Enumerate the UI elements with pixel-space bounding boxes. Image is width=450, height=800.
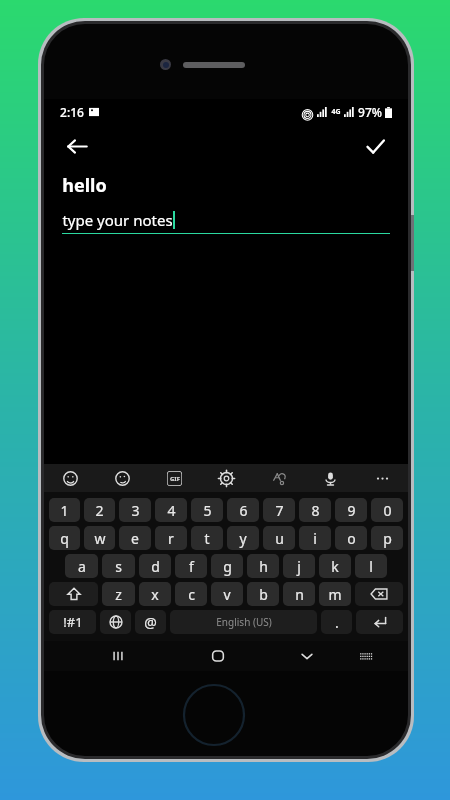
button[interactable]: GIF [162, 466, 186, 490]
staticText: o [347, 529, 356, 548]
button[interactable]: e [119, 526, 151, 550]
staticText: 2 [95, 501, 104, 520]
button[interactable]: Hide keyboard [292, 641, 322, 671]
staticText: y [239, 529, 247, 548]
button[interactable]: m [319, 582, 351, 606]
button[interactable]: Translate [266, 466, 290, 490]
staticText: x [151, 585, 159, 604]
staticText: a [78, 557, 86, 576]
staticText: f [189, 557, 194, 576]
button[interactable]: Settings [214, 466, 238, 490]
staticText: 4 [167, 501, 176, 520]
button[interactable]: s [102, 554, 135, 578]
button[interactable]: . [321, 610, 352, 634]
button[interactable]: English (US) [170, 610, 317, 634]
button[interactable]: Emoji [58, 466, 82, 490]
staticText: 4G [331, 107, 341, 117]
button[interactable]: Stickers [110, 466, 134, 490]
button[interactable]: o [335, 526, 367, 550]
staticText: j [297, 557, 301, 576]
button[interactable]: 1 [49, 498, 80, 522]
button[interactable]: At symbol [135, 610, 166, 634]
button[interactable]: f [175, 554, 207, 578]
button[interactable]: More options [370, 466, 394, 490]
button[interactable]: t [191, 526, 223, 550]
staticText: !#1 [63, 613, 83, 631]
button[interactable]: Back [58, 127, 96, 165]
staticText: English (US) [216, 615, 272, 629]
button[interactable]: !#1 [49, 610, 96, 634]
button[interactable]: w [84, 526, 115, 550]
button[interactable]: c [175, 582, 207, 606]
button[interactable]: k [319, 554, 351, 578]
staticText: 0 [383, 501, 392, 520]
button[interactable]: 6 [227, 498, 259, 522]
staticText: g [223, 557, 232, 576]
button[interactable]: Recents [103, 641, 133, 671]
button[interactable]: Enter [356, 610, 403, 634]
button[interactable]: h [247, 554, 279, 578]
staticText: e [131, 529, 139, 548]
staticText: 5 [203, 501, 212, 520]
staticText: s [115, 557, 122, 576]
button[interactable]: 5 [191, 498, 223, 522]
staticText: l [369, 557, 373, 576]
staticText: d [151, 557, 160, 576]
staticText: 6 [239, 501, 248, 520]
button[interactable]: 7 [263, 498, 295, 522]
button[interactable]: Backspace [355, 582, 403, 606]
staticText: u [275, 529, 284, 548]
button[interactable]: n [283, 582, 315, 606]
button[interactable]: Save note [356, 127, 394, 165]
button[interactable]: type your notes [62, 210, 390, 234]
staticText: @ [144, 613, 157, 632]
staticText: r [168, 529, 174, 548]
staticText: p [383, 529, 392, 548]
staticText: 1 [60, 501, 69, 520]
button[interactable]: p [371, 526, 403, 550]
staticText: w [94, 529, 106, 548]
staticText: k [331, 557, 339, 576]
staticText: b [259, 585, 268, 604]
staticText: h [259, 557, 268, 576]
button[interactable]: i [299, 526, 331, 550]
staticText: 9 [347, 501, 356, 520]
staticText: GIF [170, 475, 180, 483]
button[interactable]: j [283, 554, 315, 578]
button[interactable]: 0 [371, 498, 403, 522]
button[interactable]: y [227, 526, 259, 550]
button[interactable]: z [102, 582, 135, 606]
button[interactable]: 4 [155, 498, 187, 522]
button[interactable]: v [211, 582, 243, 606]
button[interactable]: l [355, 554, 387, 578]
button[interactable]: a [65, 554, 98, 578]
staticText: 97% [358, 104, 382, 120]
button[interactable]: g [211, 554, 243, 578]
button[interactable]: Voice input [318, 466, 342, 490]
button[interactable]: Switch keyboard [351, 641, 381, 671]
button[interactable]: 9 [335, 498, 367, 522]
button[interactable]: 8 [299, 498, 331, 522]
staticText: 3 [131, 501, 140, 520]
button[interactable]: u [263, 526, 295, 550]
button[interactable]: d [139, 554, 171, 578]
button[interactable]: Shift [49, 582, 98, 606]
button[interactable]: Change language [100, 610, 131, 634]
button[interactable]: 3 [119, 498, 151, 522]
staticText: v [223, 585, 231, 604]
staticText: i [313, 529, 317, 548]
button[interactable]: 2 [84, 498, 115, 522]
staticText: 2:16 [60, 104, 84, 120]
button[interactable]: x [139, 582, 171, 606]
staticText: m [328, 585, 342, 604]
button[interactable]: q [49, 526, 80, 550]
staticText: t [204, 529, 210, 548]
button[interactable]: r [155, 526, 187, 550]
staticText: n [295, 585, 304, 604]
staticText: type your notes [62, 210, 173, 230]
button[interactable]: b [247, 582, 279, 606]
staticText: hello [62, 173, 107, 198]
staticText: . [335, 613, 339, 632]
button[interactable]: Home [203, 641, 233, 671]
staticText: 8 [311, 501, 320, 520]
